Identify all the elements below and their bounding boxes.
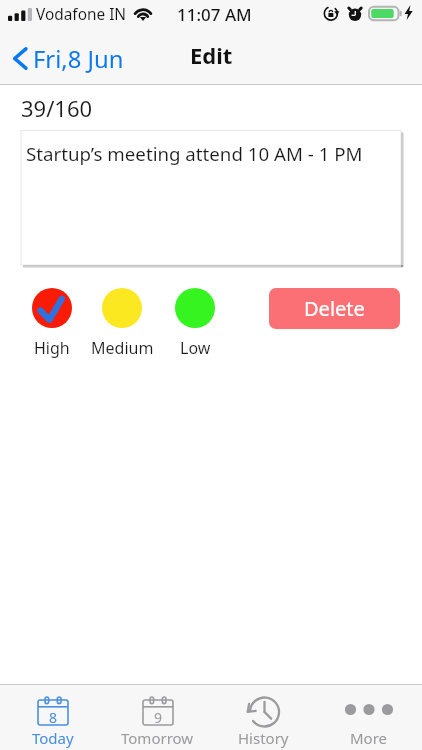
button[interactable]: Delete [269,288,400,329]
staticText: Vodafone IN [36,4,127,25]
staticText: More [350,728,388,748]
staticText: Edit [190,40,233,70]
button[interactable]: Fri,8 Jun [0,36,152,85]
staticText: Tomorrow [121,728,194,748]
staticText: 39/160 [21,93,93,123]
button[interactable]: Startup’s meeting attend 10 AM - 1 PM [19,129,403,268]
staticText: 9 [154,708,163,727]
button[interactable]: High [32,288,72,328]
staticText: Fri,8 Jun [33,43,124,75]
button[interactable]: 9 [105,685,210,750]
staticText: Low [180,337,211,359]
button[interactable]: More [316,685,422,750]
button[interactable]: History [210,685,316,750]
button[interactable]: Low [175,288,215,328]
staticText: Delete [304,295,365,322]
staticText: High [34,337,70,359]
staticText: 11:07 AM [177,3,252,26]
staticText: History [238,728,289,748]
staticText: Startup’s meeting attend 10 AM - 1 PM [26,141,363,166]
button[interactable]: 8 [0,685,105,750]
staticText: Medium [91,337,154,359]
button[interactable]: Medium [102,288,142,328]
staticText: 8 [49,708,58,727]
staticText: Today [32,728,74,748]
